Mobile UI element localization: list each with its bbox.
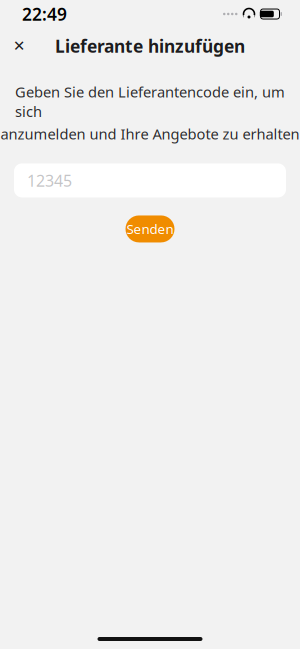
- button[interactable]: Schließen: [4, 31, 34, 61]
- button[interactable]: 12345: [14, 163, 286, 197]
- staticText: 22:49: [22, 2, 67, 25]
- button[interactable]: Senden: [125, 215, 174, 242]
- staticText: Lieferante hinzufügen: [55, 34, 245, 57]
- staticText: 12345: [27, 170, 72, 191]
- staticText: Geben Sie den Lieferantencode ein, um si…: [15, 82, 285, 121]
- staticText: anzumelden und Ihre Angebote zu erhalten: [0, 124, 299, 143]
- staticText: ✕: [13, 38, 25, 54]
- staticText: Senden: [126, 220, 173, 238]
